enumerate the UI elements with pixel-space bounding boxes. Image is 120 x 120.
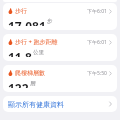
staticText: 爬樓梯層數 — [15, 69, 45, 77]
staticText: 17,081 — [8, 18, 46, 26]
staticText: 下午5:50 — [87, 70, 107, 77]
staticText: 11.8 — [8, 49, 32, 57]
button[interactable]: 步行 — [3, 3, 117, 30]
staticText: 公里 — [33, 49, 44, 56]
staticText: 122 — [8, 80, 29, 88]
button[interactable]: 爬樓梯層數 — [3, 65, 117, 92]
staticText: 下午6:01 — [87, 8, 107, 15]
staticText: 步行 + 跑步距離 — [15, 38, 58, 46]
other: Show all health data — [109, 101, 112, 107]
button[interactable]: 顯示所有健康資料 — [3, 96, 117, 112]
staticText: 層 — [30, 80, 36, 87]
staticText: 步 — [47, 18, 53, 25]
button[interactable]: 步行 + 跑步距離 — [3, 34, 117, 61]
staticText: 步行 — [15, 7, 27, 15]
staticText: 下午6:01 — [87, 39, 107, 46]
staticText: 顯示所有健康資料 — [8, 100, 64, 109]
